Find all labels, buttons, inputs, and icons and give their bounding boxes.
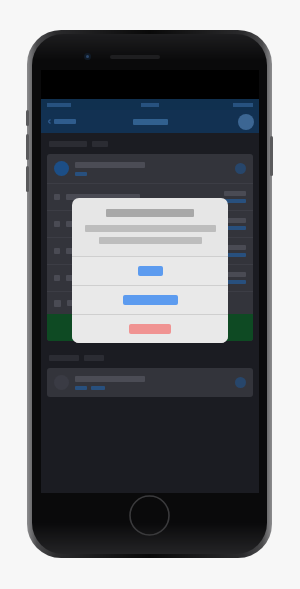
button[interactable]: Destructive action <box>72 315 228 343</box>
button[interactable] <box>45 116 78 127</box>
button[interactable]: More <box>47 368 253 397</box>
button[interactable]: Secondary action <box>72 286 228 314</box>
button[interactable] <box>47 265 253 291</box>
button[interactable]: Profile <box>238 114 254 130</box>
button[interactable] <box>47 238 253 264</box>
button[interactable] <box>47 292 253 314</box>
button[interactable]: More <box>47 154 253 341</box>
button[interactable]: More <box>235 163 246 174</box>
button[interactable]: Primary action <box>72 257 228 285</box>
button[interactable]: More <box>235 377 246 388</box>
button[interactable] <box>47 211 253 237</box>
button[interactable] <box>47 314 253 341</box>
button[interactable] <box>47 184 253 210</box>
